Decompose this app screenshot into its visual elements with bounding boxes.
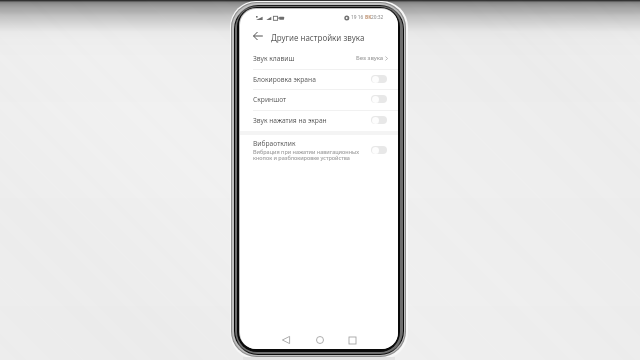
button[interactable]: Toggle (371, 95, 387, 103)
staticText: Звук нажатия на экран (253, 116, 327, 125)
staticText: Без звука (356, 54, 384, 62)
button[interactable]: Звук клавиш (240, 48, 398, 68)
staticText: Другие настройки звука (271, 32, 365, 43)
staticText: Блокировка экрана (253, 75, 316, 84)
staticText: 19 16 (351, 14, 364, 21)
staticText: BK (365, 14, 372, 21)
button[interactable]: Toggle (371, 146, 387, 154)
staticText: Вибрация при нажатии навигационных кнопо… (253, 148, 360, 162)
button[interactable]: Recents (344, 332, 360, 348)
button[interactable]: Скриншот (240, 89, 398, 109)
staticText: Звук клавиш (253, 54, 295, 63)
staticText: Скриншот (253, 95, 287, 104)
button[interactable]: Back (278, 332, 294, 348)
button[interactable]: Toggle (371, 116, 387, 124)
button[interactable]: Блокировка экрана (240, 69, 398, 89)
button[interactable]: Toggle (371, 75, 387, 83)
button[interactable]: Home (312, 332, 328, 348)
staticText: 20:32 (371, 14, 384, 21)
staticText: Вибраотклик (253, 139, 296, 148)
button[interactable]: Звук нажатия на экран (240, 110, 398, 130)
button[interactable]: Back (250, 28, 266, 44)
